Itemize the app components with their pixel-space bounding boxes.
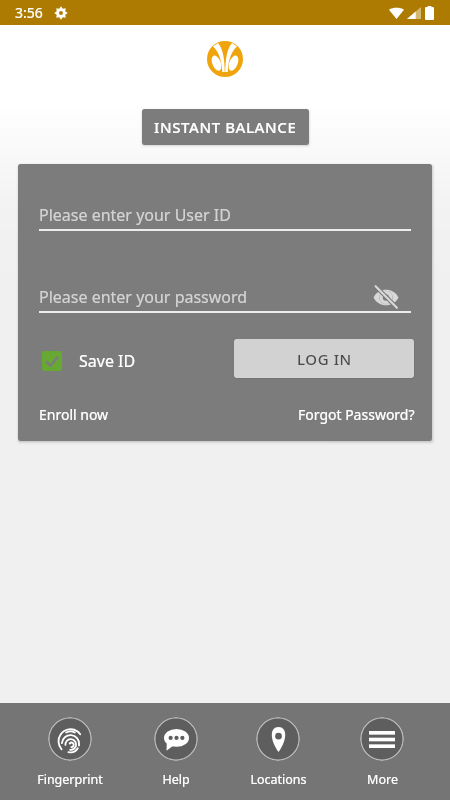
button[interactable]: Fingerprint — [18, 717, 122, 788]
button[interactable]: More — [330, 717, 434, 788]
staticText: 3:56 — [15, 3, 43, 22]
staticText: Save ID — [79, 350, 136, 372]
button[interactable]: INSTANT BALANCE — [142, 109, 309, 145]
staticText: Help — [162, 771, 190, 788]
staticText: Please enter your password — [39, 286, 248, 308]
staticText: LOG IN — [297, 349, 352, 369]
button[interactable]: Forgot Password? — [298, 405, 415, 424]
button[interactable]: Help — [124, 717, 228, 788]
button[interactable]: Enroll now — [39, 405, 109, 424]
staticText: Fingerprint — [37, 771, 103, 788]
button[interactable]: Show password — [371, 283, 401, 311]
staticText: INSTANT BALANCE — [154, 117, 297, 137]
button[interactable]: Save ID — [42, 350, 136, 372]
staticText: Locations — [250, 771, 307, 788]
staticText: Forgot Password? — [298, 405, 415, 424]
button[interactable]: LOG IN — [234, 339, 414, 378]
staticText: Please enter your User ID — [39, 204, 231, 226]
button[interactable]: Locations — [226, 717, 330, 788]
staticText: Enroll now — [39, 405, 109, 424]
staticText: More — [367, 771, 398, 788]
